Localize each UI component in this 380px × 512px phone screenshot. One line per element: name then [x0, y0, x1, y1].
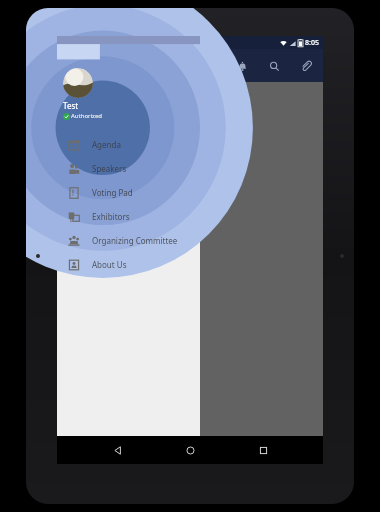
staticText: Organizing Committee	[92, 235, 178, 246]
staticText: Tap to retry	[163, 105, 217, 119]
button[interactable]: Search	[263, 55, 285, 77]
button[interactable]: Organizing Committee	[57, 228, 200, 252]
button[interactable]: About Us	[57, 252, 200, 276]
staticText: About Us	[92, 259, 127, 270]
staticText: Authorized	[71, 112, 102, 120]
button[interactable]: Profile photo	[63, 68, 93, 98]
staticText: Voting Pad	[92, 187, 133, 198]
staticText: 8:05	[305, 38, 319, 48]
staticText: Exhibitors	[92, 211, 130, 222]
button[interactable]: Back	[104, 437, 130, 463]
staticText: Test	[63, 100, 79, 111]
button[interactable]: Exhibitors	[57, 204, 200, 228]
button[interactable]: Profile photo	[57, 36, 200, 126]
button[interactable]: Recents	[250, 437, 276, 463]
button[interactable]: Voting Pad	[57, 180, 200, 204]
staticText: No Network Found.	[144, 88, 236, 102]
button[interactable]: Home	[177, 437, 203, 463]
staticText: Agenda	[92, 139, 121, 150]
button[interactable]: Agenda	[57, 132, 200, 156]
button[interactable]: Notifications	[231, 55, 253, 77]
button[interactable]: Speakers	[57, 156, 200, 180]
staticText: Speakers	[92, 163, 127, 174]
button[interactable]: Attachments	[295, 55, 317, 77]
